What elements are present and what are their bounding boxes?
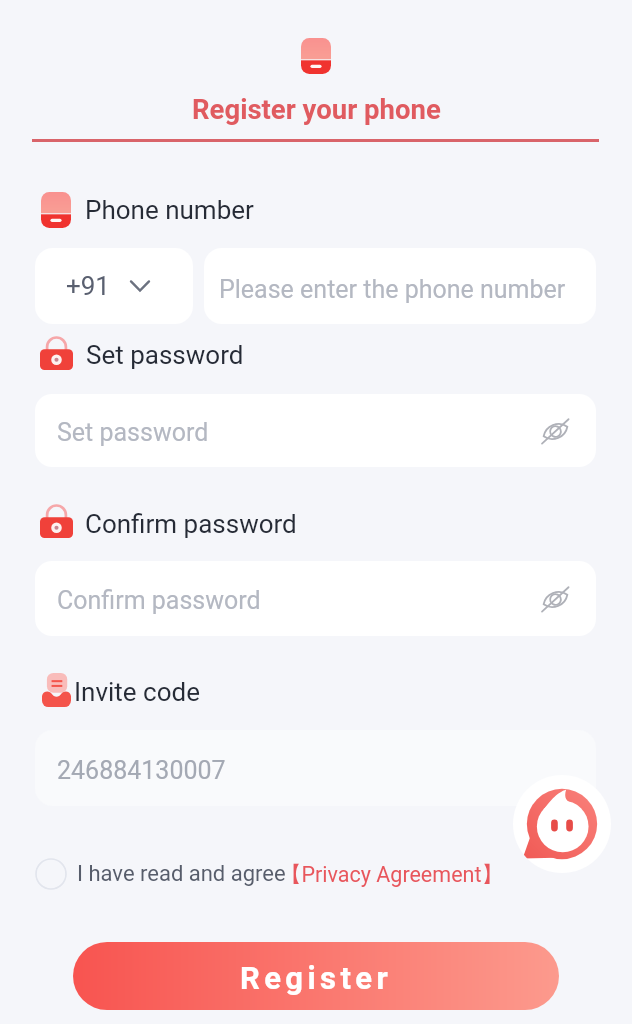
staticText: Register your phone	[192, 93, 441, 125]
button[interactable]: Select country calling code, +91	[35, 248, 193, 324]
staticText: 246884130007	[57, 756, 226, 785]
button[interactable]: Register	[73, 942, 559, 1010]
button[interactable]: Set password	[35, 394, 596, 467]
staticText: Register	[240, 960, 393, 996]
staticText: Phone number	[85, 195, 254, 225]
staticText: Set password	[57, 418, 209, 447]
button[interactable]: Show Confirm password	[536, 580, 574, 618]
button[interactable]: 246884130007	[35, 730, 596, 806]
button[interactable]: Please enter the phone number	[204, 248, 596, 324]
staticText: Set password	[86, 340, 244, 370]
button[interactable]: I have read and agree checkbox	[34, 857, 68, 891]
staticText: Please enter the phone number	[219, 275, 566, 304]
button[interactable]: Show Set password	[536, 412, 574, 450]
staticText: 【Privacy Agreement】	[280, 861, 503, 888]
staticText: Confirm password	[57, 586, 261, 615]
button[interactable]: Customer support chat	[513, 775, 611, 873]
staticText: Confirm password	[85, 509, 297, 539]
staticText: Invite code	[74, 677, 200, 707]
staticText: +91	[66, 271, 110, 301]
button[interactable]: Confirm password	[35, 561, 596, 636]
button[interactable]: 【Privacy Agreement】	[280, 861, 503, 888]
staticText: I have read and agree	[77, 861, 286, 887]
